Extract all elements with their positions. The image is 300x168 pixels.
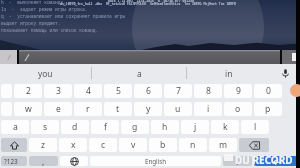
staticText: DU RECORD [235, 153, 293, 167]
staticText: you [38, 68, 53, 79]
button[interactable]: 9 [224, 84, 252, 98]
button[interactable]: r [74, 102, 102, 116]
button[interactable]: 0 [254, 84, 282, 98]
button[interactable]: m [209, 138, 237, 152]
button[interactable]: Record [290, 84, 300, 97]
button[interactable]: t [104, 102, 132, 116]
button[interactable]: z [29, 138, 57, 152]
button[interactable]: v [119, 138, 147, 152]
staticText: x [71, 139, 76, 151]
button[interactable]: h [151, 120, 179, 134]
staticText: o [235, 103, 241, 115]
button[interactable]: n [179, 138, 207, 152]
staticText: показывает помощь или список команд. [1, 27, 99, 33]
button[interactable]: you [0, 64, 91, 82]
button[interactable]: l [241, 120, 269, 134]
button[interactable]: 2 [14, 84, 42, 98]
staticText: u [175, 103, 181, 115]
button[interactable]: b [149, 138, 177, 152]
staticText: w [25, 103, 32, 115]
staticText: r [86, 103, 90, 115]
button[interactable]: Voice input [270, 64, 300, 82]
staticText: f [104, 121, 107, 133]
button[interactable]: c [89, 138, 117, 152]
staticText: y [146, 103, 151, 115]
staticText: s [43, 121, 48, 133]
staticText: z [41, 139, 46, 151]
button[interactable]: y [134, 102, 162, 116]
staticText: back 1.13.001 12/4.2016, a 50/36.077 0x1… [108, 0, 195, 3]
staticText: 5 [116, 85, 121, 97]
button[interactable]: a [1, 120, 29, 134]
button[interactable]: j [181, 120, 209, 134]
staticText: ds_10070_fcs_hull -dbx RF_tricks0 FACSFF… [60, 2, 236, 6]
button[interactable]: 7 [164, 84, 192, 98]
staticText: m [219, 139, 228, 151]
button[interactable]: Shift [1, 138, 27, 152]
staticText: h [162, 121, 168, 133]
staticText: ls - задает режим игры игрока. [1, 6, 88, 12]
button[interactable]: in [187, 64, 270, 82]
button[interactable]: i [194, 102, 222, 116]
staticText: a [137, 68, 142, 79]
staticText: l [254, 121, 257, 133]
staticText: . [236, 156, 239, 166]
staticText: q - устанавливает или сохраняет правила … [1, 13, 126, 19]
staticText: g [132, 121, 138, 133]
staticText: 8 [206, 85, 211, 97]
staticText: 6 [146, 85, 151, 97]
button[interactable]: Send [282, 50, 297, 64]
button[interactable]: k [211, 120, 239, 134]
staticText: in [225, 68, 233, 79]
button[interactable]: 3 [44, 84, 72, 98]
staticText: k [223, 121, 228, 133]
staticText: 9 [236, 85, 241, 97]
button[interactable]: o [224, 102, 252, 116]
staticText: English [145, 157, 167, 165]
button[interactable] [19, 50, 280, 64]
staticText: n [190, 139, 196, 151]
staticText: ?123 [4, 157, 18, 166]
staticText: , [42, 156, 45, 166]
button[interactable]: u [164, 102, 192, 116]
button[interactable]: s [31, 120, 59, 134]
staticText: h - выполняет команду, [1, 0, 66, 5]
button[interactable]: p [254, 102, 282, 116]
button[interactable]: x [59, 138, 87, 152]
button[interactable]: Backspace [239, 138, 269, 152]
button[interactable]: English [90, 156, 221, 166]
button[interactable]: a [92, 64, 186, 82]
staticText: c [101, 139, 106, 151]
staticText: e [56, 103, 61, 115]
staticText: i [207, 103, 210, 115]
button[interactable]: f [91, 120, 119, 134]
button[interactable]: Enter [254, 156, 299, 166]
button[interactable]: ?123 [1, 156, 27, 166]
button[interactable]: e [44, 102, 72, 116]
staticText: 3 [56, 85, 61, 97]
button[interactable]: , [29, 156, 58, 166]
staticText: 2 [26, 85, 31, 97]
button[interactable]: d [61, 120, 89, 134]
button[interactable]: w [14, 102, 42, 116]
staticText: 7 [176, 85, 181, 97]
button[interactable]: 4 [74, 84, 102, 98]
staticText: выдает игроку предмет. [1, 20, 61, 26]
button[interactable]: . [223, 156, 252, 166]
staticText: d [72, 121, 78, 133]
button[interactable]: Keyboard options [0, 50, 17, 64]
staticText: a [13, 121, 18, 133]
button[interactable]: 8 [194, 84, 222, 98]
staticText: j [194, 121, 197, 133]
staticText: b [160, 139, 166, 151]
staticText: 4 [86, 85, 91, 97]
staticText: v [131, 139, 136, 151]
staticText: t [116, 103, 120, 115]
button[interactable]: Change language [60, 156, 88, 166]
staticText: 0 [266, 85, 271, 97]
button[interactable]: g [121, 120, 149, 134]
button[interactable]: 6 [134, 84, 162, 98]
button[interactable]: 5 [104, 84, 132, 98]
